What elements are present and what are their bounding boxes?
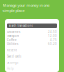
- staticText: Utilities: [7, 42, 18, 46]
- staticText: Manage your money in one simple place: [2, 2, 49, 13]
- staticText: Search transactions: [8, 24, 32, 27]
- staticText: 12.00: [48, 34, 57, 38]
- staticText: 24.50: [48, 30, 57, 34]
- staticText: Settings: [7, 61, 18, 64]
- staticText: Help: [7, 67, 14, 70]
- staticText: Transport: [7, 34, 19, 38]
- staticText: Recent: [7, 48, 17, 52]
- staticText: Coffee: [7, 38, 17, 42]
- staticText: 4.75: [50, 38, 57, 42]
- button[interactable]: Search transactions: [7, 23, 57, 28]
- staticText: 60.20: [48, 42, 57, 46]
- staticText: Groceries: [7, 30, 20, 34]
- staticText: Saved cards: [7, 55, 21, 58]
